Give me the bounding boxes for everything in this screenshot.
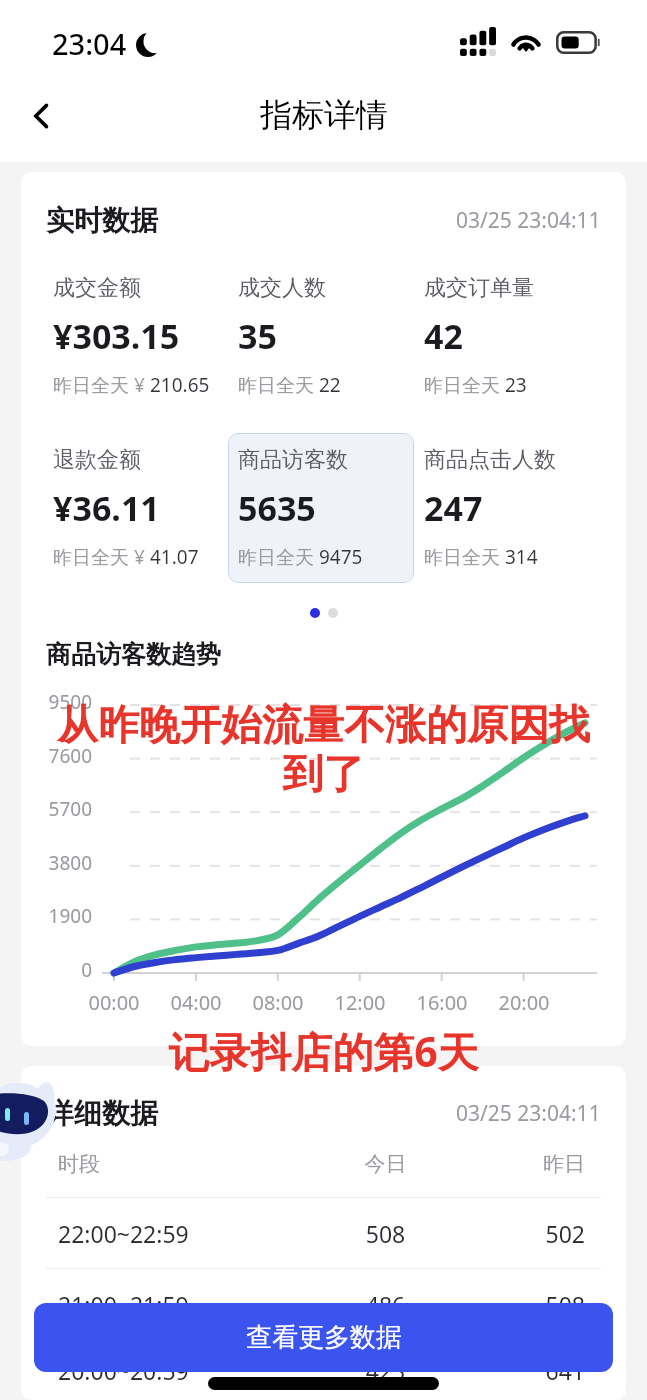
staticText: 16:00 xyxy=(406,989,478,1016)
staticText: 1900 xyxy=(32,903,92,929)
staticText: 41.07 xyxy=(150,544,199,570)
staticText: 9475 xyxy=(319,544,363,570)
staticText: 5635 xyxy=(238,485,316,531)
staticText: 成交人数 xyxy=(238,274,326,302)
staticText: 查看更多数据 xyxy=(246,1321,402,1354)
staticText: 03/25 23:04:11 xyxy=(456,206,601,235)
staticText: 23:04 xyxy=(52,24,127,63)
staticText: 商品访客数趋势 xyxy=(46,639,221,670)
staticText: 04:00 xyxy=(160,989,232,1016)
staticText: 210.65 xyxy=(150,372,210,398)
staticText: 昨日 xyxy=(452,1151,585,1177)
staticText: 昨日全天 ¥ xyxy=(53,372,150,398)
button[interactable]: 查看更多数据 xyxy=(34,1303,613,1372)
staticText: 20:00~20:59 xyxy=(58,1355,319,1386)
staticText: 昨日全天 xyxy=(238,372,319,398)
staticText: ¥303.15 xyxy=(53,313,180,359)
staticText: 03/25 23:04:11 xyxy=(456,1099,601,1128)
staticText: 指标详情 xyxy=(260,95,388,135)
staticText: 5700 xyxy=(32,796,92,822)
staticText: 35 xyxy=(238,313,277,359)
staticText: 08:00 xyxy=(242,989,314,1016)
staticText: 商品访客数 xyxy=(238,446,348,474)
staticText: 昨日全天 ¥ xyxy=(53,544,150,570)
staticText: 成交金额 xyxy=(53,274,141,302)
staticText: 314 xyxy=(505,544,538,570)
staticText: 22 xyxy=(319,372,341,398)
staticText: 昨日全天 xyxy=(424,544,505,570)
staticText: 42 xyxy=(424,313,463,359)
staticText: 今日 xyxy=(319,1151,452,1177)
staticText: 3800 xyxy=(32,850,92,876)
staticText: ¥36.11 xyxy=(53,485,160,531)
staticText: 12:00 xyxy=(324,989,396,1016)
staticText: 247 xyxy=(424,485,483,531)
staticText: 7600 xyxy=(32,743,92,769)
staticText: 508 xyxy=(452,1289,585,1320)
staticText: 时段 xyxy=(58,1151,319,1177)
staticText: 423 xyxy=(319,1355,452,1386)
staticText: 0 xyxy=(32,957,92,983)
staticText: 详细数据 xyxy=(46,1096,158,1131)
staticText: 641 xyxy=(452,1355,585,1386)
staticText: 记录抖店的第6天 xyxy=(0,1023,647,1079)
staticText: 退款金额 xyxy=(53,446,141,474)
staticText: 实时数据 xyxy=(46,203,158,238)
staticText: 22:00~22:59 xyxy=(58,1218,319,1249)
staticText: 508 xyxy=(319,1218,452,1249)
staticText: 商品点击人数 xyxy=(424,446,556,474)
button[interactable]: Back xyxy=(17,91,67,141)
staticText: 486 xyxy=(319,1289,452,1320)
staticText: 昨日全天 xyxy=(424,372,505,398)
staticText: 20:00 xyxy=(488,989,560,1016)
staticText: 昨日全天 xyxy=(238,544,319,570)
staticText: 成交订单量 xyxy=(424,274,534,302)
staticText: 00:00 xyxy=(78,989,150,1016)
staticText: 21:00~21:59 xyxy=(58,1289,319,1320)
staticText: 从昨晚开始流量不涨的原因找 到了 xyxy=(30,700,617,800)
staticText: 23 xyxy=(505,372,527,398)
staticText: 9500 xyxy=(32,689,92,715)
staticText: 502 xyxy=(452,1218,585,1249)
